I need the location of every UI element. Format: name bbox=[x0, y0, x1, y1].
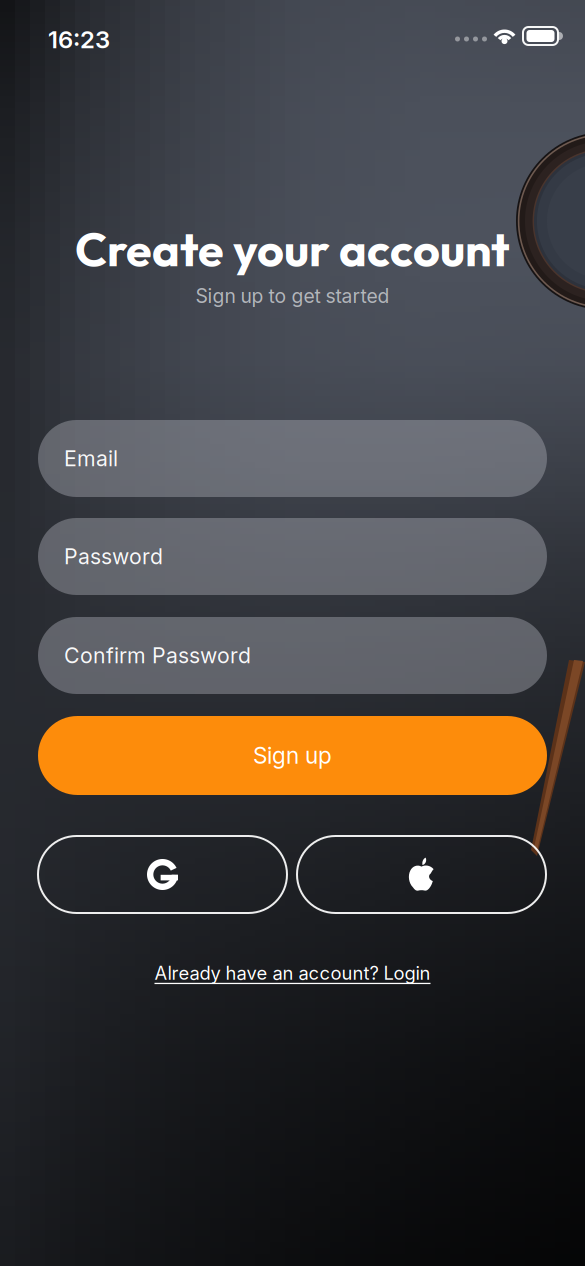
button[interactable]: Sign up with Google bbox=[38, 836, 287, 913]
button[interactable]: Confirm Password bbox=[38, 617, 547, 694]
staticText: Sign up to get started bbox=[195, 284, 389, 308]
button[interactable]: Already have an account? Login bbox=[0, 959, 585, 987]
staticText: Email bbox=[64, 446, 118, 471]
button[interactable]: Password bbox=[38, 518, 547, 595]
button[interactable]: Sign up bbox=[38, 716, 547, 795]
button[interactable]: Email bbox=[38, 420, 547, 497]
staticText: Already have an account? Login bbox=[154, 962, 430, 984]
staticText: Sign up bbox=[253, 742, 332, 769]
staticText: Create your account bbox=[75, 220, 510, 278]
staticText: 16:23 bbox=[48, 25, 110, 54]
staticText: Confirm Password bbox=[64, 643, 251, 668]
staticText: Password bbox=[64, 544, 163, 569]
button[interactable]: Sign up with Apple bbox=[297, 836, 546, 913]
